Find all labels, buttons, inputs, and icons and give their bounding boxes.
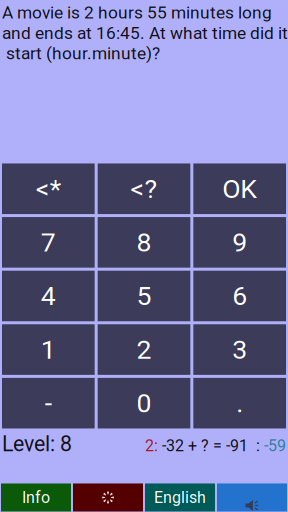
staticText: 2: [145, 436, 158, 455]
button[interactable]: OK [193, 163, 286, 214]
button[interactable]: . [193, 378, 286, 428]
staticText: 9 [232, 227, 247, 258]
button[interactable]: Sound [217, 483, 287, 511]
staticText: . [236, 387, 243, 419]
button[interactable]: Brightness [73, 483, 143, 511]
staticText: 0 [136, 387, 151, 419]
button[interactable]: English [145, 483, 215, 511]
staticText: start (hour.minute)? [2, 43, 160, 63]
staticText: - [45, 387, 52, 419]
button[interactable]: 5 [98, 271, 190, 321]
staticText: A movie is 2 hours 55 minutes long [2, 2, 272, 23]
button[interactable]: <? [98, 163, 190, 214]
button[interactable]: <* [2, 163, 95, 214]
staticText: 2 [136, 334, 151, 365]
button[interactable]: 1 [2, 324, 95, 375]
staticText: 6 [232, 280, 247, 312]
button[interactable]: - [2, 378, 95, 428]
staticText: : [248, 436, 264, 455]
staticText: and ends at 16:45. At what time did it [2, 23, 288, 43]
button[interactable]: 6 [193, 271, 286, 321]
staticText: OK [222, 173, 257, 204]
staticText: Level: 8 [2, 431, 72, 456]
staticText: English [154, 488, 206, 507]
staticText: -59 [264, 436, 286, 455]
staticText: 1 [41, 334, 56, 365]
staticText: <? [130, 173, 157, 204]
button[interactable]: 3 [193, 324, 286, 375]
staticText: 3 [232, 334, 247, 365]
button[interactable]: Info [1, 483, 71, 511]
staticText: 7 [41, 227, 56, 258]
button[interactable]: 9 [193, 217, 286, 268]
staticText: 5 [136, 280, 151, 312]
staticText: <* [36, 173, 61, 204]
staticText: 8 [136, 227, 151, 258]
button[interactable]: 2 [98, 324, 190, 375]
staticText: 4 [41, 280, 56, 312]
staticText: Info [22, 488, 50, 507]
staticText: -32 + ? = -91 [158, 436, 248, 455]
button[interactable]: 0 [98, 378, 190, 428]
button[interactable]: 4 [2, 271, 95, 321]
button[interactable]: 8 [98, 217, 190, 268]
button[interactable]: 7 [2, 217, 95, 268]
